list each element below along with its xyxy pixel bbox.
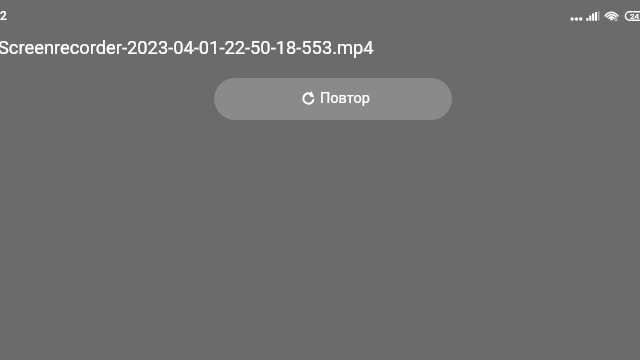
- other: Repeat: [302, 92, 315, 105]
- button[interactable]: Repeat: [214, 78, 452, 120]
- staticText: 2: [0, 9, 7, 23]
- staticText: Повтор: [320, 90, 370, 107]
- staticText: Screenrecorder-2023-04-01-22-50-18-553.m…: [0, 37, 374, 58]
- staticText: 24: [630, 12, 640, 21]
